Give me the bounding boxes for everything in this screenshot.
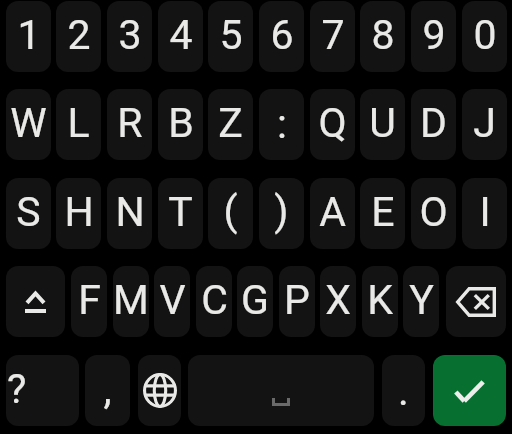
staticText: X: [325, 276, 351, 324]
staticText: J: [473, 99, 496, 147]
button[interactable]: T: [158, 178, 203, 249]
staticText: 6: [270, 11, 294, 59]
button[interactable]: L: [56, 89, 101, 160]
button[interactable]: U: [360, 89, 405, 160]
staticText: C: [201, 276, 228, 324]
button[interactable]: P: [279, 266, 315, 337]
button[interactable]: Q: [310, 89, 355, 160]
button[interactable]: Backspace: [446, 266, 506, 337]
button[interactable]: Space: [188, 355, 374, 426]
button[interactable]: ): [259, 178, 304, 249]
button[interactable]: 6: [259, 1, 304, 72]
button[interactable]: A: [310, 178, 355, 249]
button[interactable]: C: [196, 266, 232, 337]
staticText: K: [367, 276, 393, 324]
staticText: U: [369, 99, 396, 147]
staticText: ,: [103, 365, 112, 413]
staticText: M: [113, 276, 149, 324]
staticText: Z: [218, 99, 243, 147]
button[interactable]: B: [158, 89, 203, 160]
button[interactable]: ,: [85, 355, 130, 426]
staticText: Y: [409, 276, 434, 324]
button[interactable]: V: [154, 266, 190, 337]
staticText: P: [284, 276, 310, 324]
button[interactable]: W: [6, 89, 51, 160]
staticText: ?: [7, 365, 27, 413]
button[interactable]: X: [320, 266, 356, 337]
button[interactable]: D: [411, 89, 456, 160]
button[interactable]: E: [360, 178, 405, 249]
button[interactable]: 2: [56, 1, 101, 72]
button[interactable]: N: [107, 178, 152, 249]
staticText: ): [274, 187, 289, 235]
staticText: V: [159, 276, 186, 324]
button[interactable]: J: [462, 89, 507, 160]
button[interactable]: Enter: [433, 355, 506, 426]
staticText: A: [319, 188, 346, 236]
staticText: 7: [321, 11, 345, 59]
staticText: O: [419, 188, 448, 236]
button[interactable]: 3: [107, 1, 152, 72]
staticText: 4: [169, 11, 193, 59]
staticText: (: [223, 187, 238, 235]
staticText: 5: [219, 11, 243, 59]
button[interactable]: (: [208, 178, 253, 249]
staticText: N: [115, 188, 145, 236]
staticText: F: [78, 276, 101, 324]
staticText: D: [420, 99, 447, 147]
button[interactable]: ?: [6, 355, 79, 426]
staticText: Q: [318, 99, 347, 147]
button[interactable]: Y: [403, 266, 439, 337]
staticText: B: [168, 99, 194, 147]
button[interactable]: R: [107, 89, 152, 160]
button[interactable]: 9: [411, 1, 456, 72]
staticText: I: [479, 188, 491, 236]
button[interactable]: 8: [360, 1, 405, 72]
button[interactable]: Shift: [6, 266, 65, 337]
staticText: H: [64, 188, 94, 236]
staticText: 3: [118, 11, 142, 59]
staticText: 0: [473, 11, 497, 59]
button[interactable]: Switch language: [138, 355, 181, 426]
button[interactable]: 1: [6, 1, 51, 72]
staticText: R: [117, 99, 143, 147]
button[interactable]: Z: [208, 89, 253, 160]
button[interactable]: :: [259, 89, 304, 160]
staticText: L: [67, 99, 90, 147]
button[interactable]: I: [462, 178, 507, 249]
staticText: 2: [67, 11, 91, 59]
staticText: T: [168, 188, 193, 236]
button[interactable]: .: [382, 355, 425, 426]
staticText: W: [10, 99, 47, 147]
staticText: G: [241, 276, 269, 324]
staticText: 1: [17, 11, 41, 59]
button[interactable]: 5: [208, 1, 253, 72]
button[interactable]: 7: [310, 1, 355, 72]
staticText: E: [371, 188, 395, 236]
button[interactable]: 0: [462, 1, 507, 72]
staticText: :: [277, 100, 287, 148]
staticText: 8: [371, 11, 395, 59]
button[interactable]: 4: [158, 1, 203, 72]
button[interactable]: H: [56, 178, 101, 249]
button[interactable]: O: [411, 178, 456, 249]
staticText: 9: [422, 11, 446, 59]
staticText: S: [16, 188, 41, 236]
button[interactable]: F: [71, 266, 107, 337]
button[interactable]: K: [362, 266, 398, 337]
button[interactable]: M: [113, 266, 149, 337]
button[interactable]: G: [237, 266, 273, 337]
staticText: .: [398, 367, 409, 415]
button[interactable]: S: [6, 178, 51, 249]
